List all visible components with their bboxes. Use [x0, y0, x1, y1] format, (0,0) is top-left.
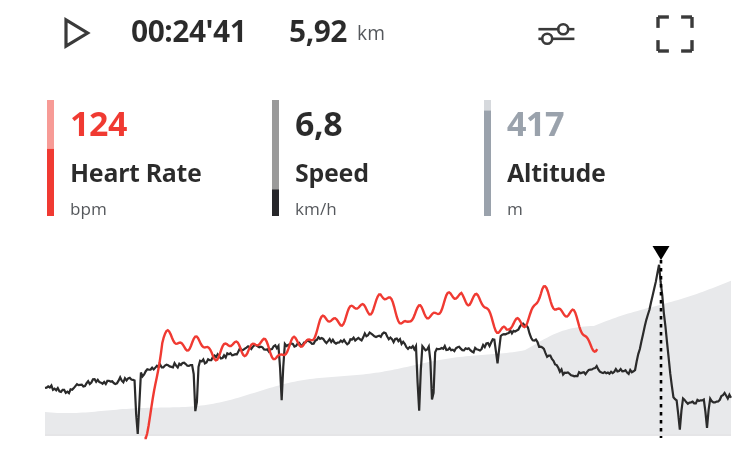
button[interactable]: Settings: [528, 6, 584, 62]
button[interactable]: [0, 238, 750, 460]
staticText: 417: [507, 100, 564, 146]
staticText: 5,92: [289, 10, 348, 51]
staticText: Heart Rate: [70, 155, 202, 189]
staticText: Speed: [295, 155, 369, 189]
staticText: km: [357, 20, 385, 46]
button[interactable]: 417: [484, 100, 606, 220]
staticText: Altitude: [507, 155, 606, 189]
staticText: 00:24'41: [131, 10, 247, 51]
staticText: km/h: [295, 197, 337, 220]
staticText: 6,8: [295, 100, 343, 146]
button[interactable]: Fullscreen: [645, 4, 705, 64]
staticText: m: [507, 197, 523, 220]
button[interactable]: Play: [50, 8, 100, 58]
staticText: bpm: [70, 197, 107, 220]
staticText: 124: [70, 100, 127, 146]
button[interactable]: 6,8: [272, 100, 369, 220]
button[interactable]: 124: [47, 100, 202, 220]
